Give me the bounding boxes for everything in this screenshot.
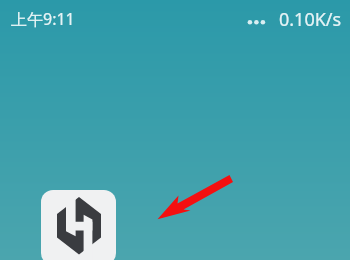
button[interactable]: More options	[243, 6, 269, 32]
staticText: 0.10K/s	[279, 7, 342, 32]
staticText: 上午9:11	[11, 8, 75, 30]
button[interactable]: Application icon	[41, 190, 116, 260]
